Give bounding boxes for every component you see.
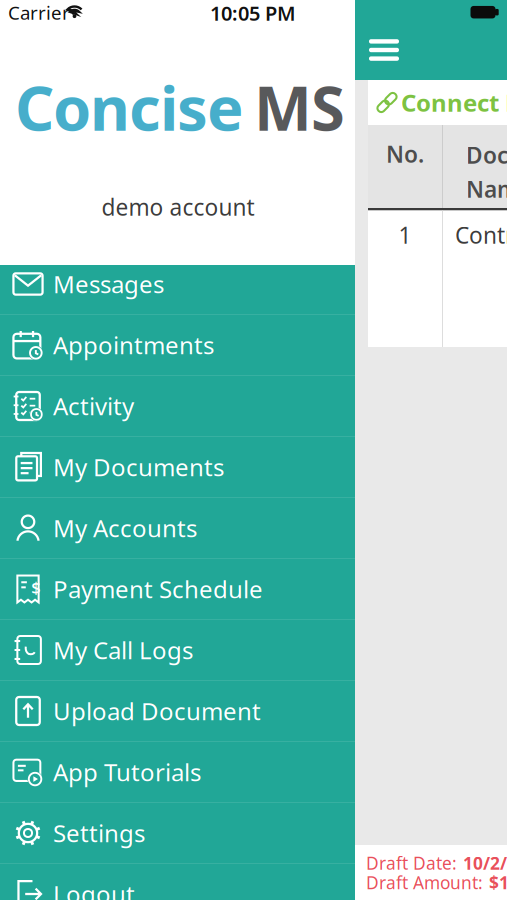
- staticText: Carrier: [8, 0, 70, 25]
- staticText: My Documents: [53, 451, 224, 483]
- staticText: Name: [466, 174, 507, 204]
- staticText: Contract: [455, 220, 507, 250]
- staticText: Connect Bank Account: [401, 87, 507, 118]
- button[interactable]: Logout: [0, 863, 355, 900]
- button[interactable]: $: [0, 558, 355, 619]
- staticText: Appointments: [53, 329, 214, 361]
- staticText: Settings: [53, 817, 145, 849]
- button[interactable]: My Documents: [0, 436, 355, 497]
- staticText: Concise: [15, 66, 244, 148]
- staticText: Messages: [53, 268, 164, 300]
- button[interactable]: Messages: [0, 253, 355, 314]
- button[interactable]: My Call Logs: [0, 619, 355, 680]
- staticText: 10/2/2025: [463, 851, 507, 874]
- button[interactable]: Activity: [0, 375, 355, 436]
- staticText: App Tutorials: [53, 756, 201, 788]
- staticText: 10:05 PM: [210, 0, 296, 26]
- button[interactable]: My Accounts: [0, 497, 355, 558]
- staticText: Document: [466, 140, 507, 170]
- button[interactable]: Menu: [369, 39, 399, 61]
- staticText: 1: [398, 220, 411, 250]
- staticText: $145.88: [489, 871, 507, 894]
- staticText: $: [31, 578, 39, 597]
- button[interactable]: App Tutorials: [0, 741, 355, 802]
- button[interactable]: Connect Bank Account: [377, 80, 507, 125]
- staticText: Activity: [53, 390, 134, 422]
- button[interactable]: Settings: [0, 802, 355, 863]
- staticText: Logout: [53, 878, 135, 900]
- staticText: Payment Schedule: [53, 573, 263, 605]
- staticText: demo account: [101, 192, 254, 222]
- staticText: MS: [254, 66, 345, 148]
- staticText: My Accounts: [53, 512, 197, 544]
- button[interactable]: Appointments: [0, 314, 355, 375]
- staticText: My Call Logs: [53, 634, 193, 666]
- staticText: No.: [386, 139, 424, 169]
- button[interactable]: Upload Document: [0, 680, 355, 741]
- staticText: Upload Document: [53, 695, 261, 727]
- staticText: Draft Amount:: [366, 871, 483, 894]
- staticText: Draft Date:: [366, 851, 457, 874]
